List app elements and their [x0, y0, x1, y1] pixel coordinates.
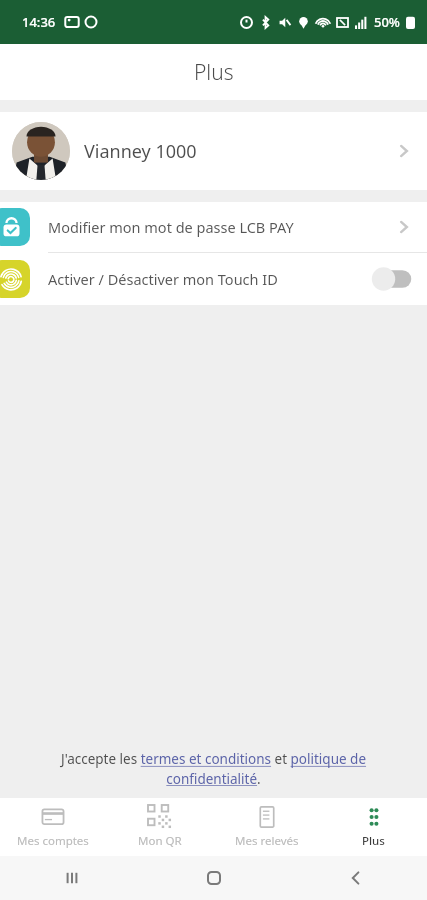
- staticText: 50%: [374, 13, 400, 31]
- button[interactable]: Mes comptes: [0, 798, 106, 856]
- button[interactable]: Plus: [320, 798, 427, 856]
- other: Back: [346, 868, 366, 888]
- button[interactable]: Activer Touch ID: [369, 266, 413, 292]
- button[interactable]: Mes relevés: [213, 798, 320, 856]
- staticText: Mes relevés: [235, 833, 299, 849]
- staticText: Activer / Désactiver mon Touch ID: [48, 269, 278, 289]
- button[interactable]: Vianney 1000: [0, 112, 427, 190]
- button[interactable]: Mon QR: [106, 798, 213, 856]
- other: Home: [204, 868, 224, 888]
- staticText: Vianney 1000: [84, 139, 197, 164]
- button[interactable]: Activer / Désactiver mon Touch ID: [0, 253, 427, 305]
- staticText: Mon QR: [138, 833, 182, 849]
- staticText: 14:36: [22, 13, 56, 31]
- staticText: Modifier mon mot de passe LCB PAY: [48, 217, 294, 237]
- other: Recents: [62, 868, 82, 888]
- staticText: Plus: [194, 58, 234, 87]
- button[interactable]: J'accepte les termes et conditions et po…: [28, 750, 399, 788]
- button[interactable]: Modifier mon mot de passe LCB PAY: [0, 202, 427, 252]
- staticText: Mes comptes: [17, 833, 89, 849]
- staticText: Plus: [362, 833, 385, 849]
